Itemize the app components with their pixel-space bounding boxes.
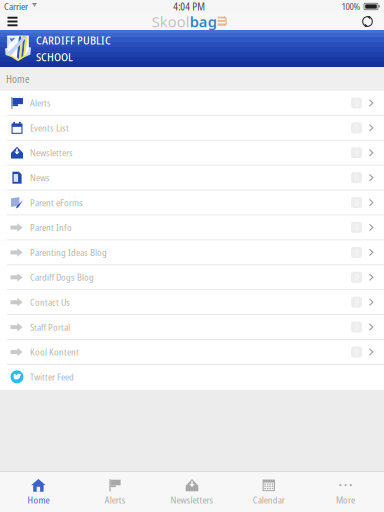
button[interactable]: Contact Us xyxy=(0,290,384,315)
staticText: News xyxy=(30,171,50,184)
staticText: Kool Kontent xyxy=(30,346,79,358)
staticText: 0 xyxy=(354,196,358,209)
button[interactable]: Newsletters xyxy=(154,472,230,512)
staticText: Calendar xyxy=(253,494,285,506)
button[interactable]: News xyxy=(0,166,384,191)
button[interactable]: Calendar xyxy=(230,472,307,512)
button[interactable]: Home xyxy=(0,472,77,512)
button[interactable]: Alerts xyxy=(77,472,154,512)
staticText: 0 xyxy=(354,346,358,358)
staticText: Home xyxy=(27,494,49,506)
staticText: 0 xyxy=(354,271,358,284)
staticText: 100% xyxy=(341,0,360,13)
staticText: SCHOOL xyxy=(36,49,73,65)
button[interactable]: Twitter Feed xyxy=(0,365,384,390)
staticText: 0 xyxy=(354,171,358,184)
staticText: Staff Portal xyxy=(30,321,70,333)
staticText: Home xyxy=(6,72,30,86)
staticText: 0 xyxy=(354,296,358,308)
button[interactable]: Parent eForms xyxy=(0,191,384,215)
button[interactable]: Menu xyxy=(0,13,25,30)
staticText: Cardiff Dogs Blog xyxy=(30,271,94,284)
staticText: Twitter Feed xyxy=(30,370,74,383)
staticText: Alerts xyxy=(105,494,126,506)
staticText: 0 xyxy=(354,321,358,333)
staticText: Carrier xyxy=(4,0,28,13)
button[interactable]: Alerts xyxy=(0,91,384,116)
staticText: Contact Us xyxy=(30,296,70,308)
staticText: 0 xyxy=(354,221,358,234)
staticText: Newsletters xyxy=(30,146,73,159)
button[interactable]: Events List xyxy=(0,116,384,141)
staticText: Parent Info xyxy=(30,221,72,234)
button[interactable]: Newsletters xyxy=(0,141,384,166)
staticText: Alerts xyxy=(30,97,51,109)
staticText: Parent eForms xyxy=(30,196,83,209)
staticText: 0 xyxy=(354,121,358,134)
staticText: CARDIFF PUBLIC xyxy=(36,32,111,48)
button[interactable]: Kool Kontent xyxy=(0,340,384,365)
staticText: 0 xyxy=(354,246,358,259)
staticText: 4:04 PM xyxy=(173,0,205,13)
button[interactable]: Parenting Ideas Blog xyxy=(0,240,384,265)
staticText: Skool xyxy=(152,12,190,31)
staticText: bag xyxy=(190,12,217,31)
staticText: Newsletters xyxy=(170,494,213,506)
staticText: More xyxy=(336,494,355,506)
button[interactable]: Cardiff Dogs Blog xyxy=(0,265,384,290)
button[interactable]: More xyxy=(307,472,384,512)
button[interactable]: Staff Portal xyxy=(0,315,384,340)
staticText: 0 xyxy=(354,97,358,109)
staticText: Parenting Ideas Blog xyxy=(30,246,107,259)
staticText: 0 xyxy=(354,146,358,159)
staticText: Events List xyxy=(30,121,69,134)
button[interactable]: Parent Info xyxy=(0,215,384,240)
button[interactable]: Refresh xyxy=(354,13,381,30)
